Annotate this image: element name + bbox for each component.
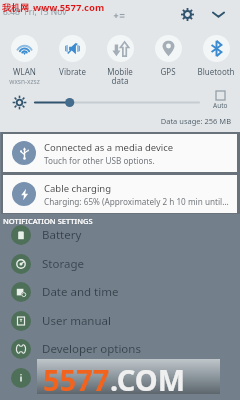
button[interactable]: Cable charging [3,175,237,213]
staticText: 我机网 [2,2,29,13]
staticText: NOTIFICATION SETTINGS [3,216,93,226]
staticText: .COM [110,360,186,399]
staticText: WLAN [13,66,36,77]
staticText: Touch for other USB options. [44,155,155,166]
staticText: GPS [160,66,176,77]
staticText: 8:48 Fri, 15 Nov [3,6,67,18]
staticText: Bluetooth [197,66,235,77]
staticText: Developer options [42,341,141,357]
staticText: User manual [42,313,111,329]
staticText: Charging: 65% (Approximately 2 h 10 min … [44,196,229,207]
button[interactable]: GPS [144,35,192,77]
button[interactable]: About phone [0,363,240,392]
staticText: wxsn-xzsz [9,77,40,86]
staticText: Storage [42,256,84,272]
staticText: Connected as a media device [44,141,174,154]
button[interactable]: Vibrate [48,35,96,77]
button[interactable]: Auto [206,91,234,110]
button[interactable]: Battery [0,220,240,249]
staticText: Auto [213,101,228,110]
staticText: www.5577.com [33,1,105,14]
staticText: Data usage: 256 MB [0,116,231,126]
staticText: Date and time [42,284,119,300]
staticText: Vibrate [59,66,86,77]
button[interactable]: Settings [178,5,196,23]
staticText: About phone [42,370,113,386]
staticText: Mobile data [107,66,133,87]
staticText: Battery [42,227,82,243]
button[interactable]: Date and time [0,277,240,306]
button[interactable]: Connected as a media device [3,134,237,172]
button[interactable]: Storage [0,249,240,278]
button[interactable]: Developer options [0,334,240,363]
button[interactable]: User manual [0,306,240,335]
staticText: 5577 [43,360,110,399]
button[interactable]: Bluetooth [192,35,240,77]
button[interactable]: Mobile data [96,35,144,87]
staticText: Cable charging [44,182,112,195]
button[interactable]: Collapse panel [209,5,227,23]
button[interactable]: WLAN [0,35,48,86]
